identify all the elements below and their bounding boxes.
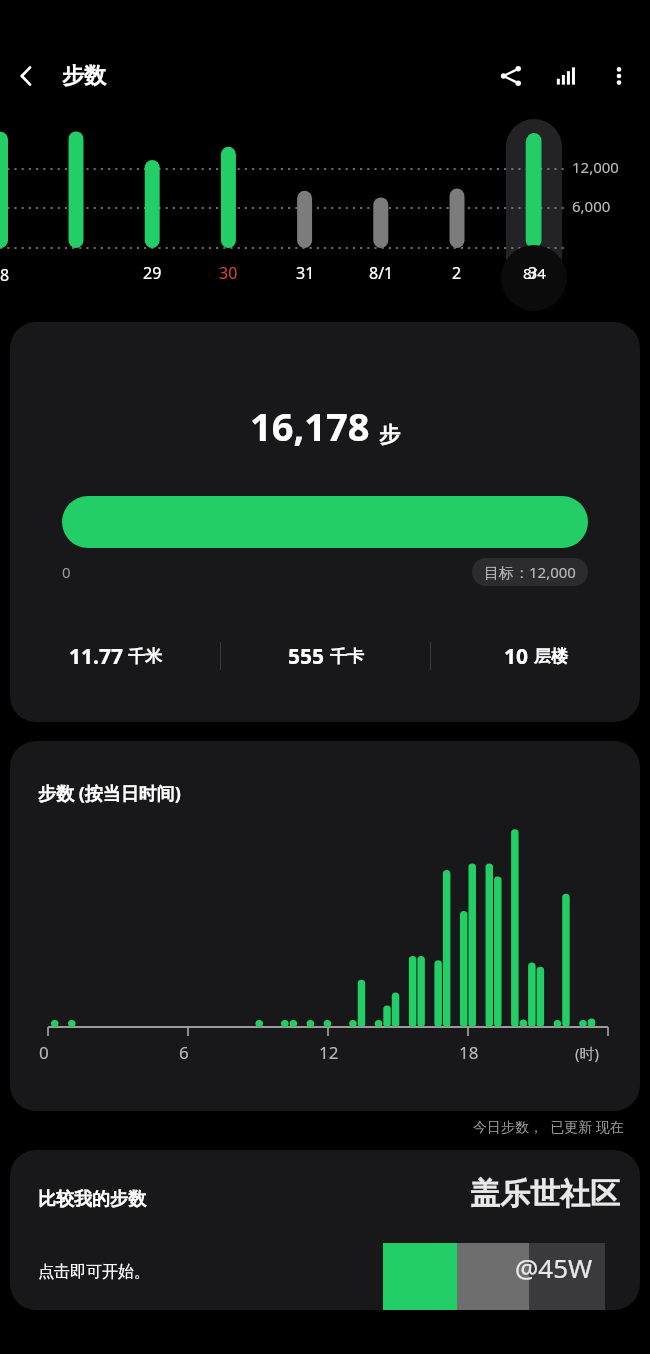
button[interactable]: 29	[122, 258, 182, 288]
staticText: 步数 (按当日时间)	[38, 781, 181, 806]
staticText: 3	[528, 262, 538, 284]
staticText: 今日步数， 已更新 现在	[473, 1117, 624, 1136]
button[interactable]: 8/1	[351, 258, 411, 288]
staticText: 8/4	[523, 263, 546, 283]
staticText: 比较我的步数	[38, 1188, 146, 1211]
staticText: 8	[0, 264, 10, 286]
staticText: 点击即可开始。	[38, 1262, 150, 1282]
button[interactable]: Back	[0, 49, 54, 103]
button[interactable]: More options	[592, 49, 646, 103]
button[interactable]: 3	[503, 258, 563, 288]
button[interactable]: 16,178	[10, 322, 640, 722]
staticText: 31	[296, 262, 315, 284]
staticText: 8/1	[369, 262, 394, 284]
button[interactable]: 31	[275, 258, 335, 288]
staticText: 12	[319, 1041, 339, 1064]
staticText: 步数	[62, 62, 106, 90]
button[interactable]: Chart	[538, 49, 592, 103]
staticText: 0	[62, 562, 71, 582]
button[interactable]: 步数 (按当日时间)	[10, 741, 640, 1111]
button[interactable]: 30	[198, 258, 258, 288]
button[interactable]: Share	[484, 49, 538, 103]
button[interactable]: 11.77	[10, 636, 220, 676]
staticText: 6,000	[572, 196, 611, 216]
staticText: 0	[39, 1041, 49, 1064]
staticText: @45W	[515, 1250, 593, 1285]
staticText: 千米	[128, 646, 162, 667]
staticText: 18	[459, 1041, 479, 1064]
button[interactable]: 10	[431, 636, 640, 676]
staticText: 步	[379, 422, 400, 448]
staticText: 12,000	[572, 157, 619, 177]
staticText: 30	[219, 262, 238, 284]
button[interactable]: 2	[427, 258, 487, 288]
staticText: 2	[452, 262, 462, 284]
staticText: 6	[179, 1041, 189, 1064]
staticText: 千卡	[330, 646, 364, 667]
staticText: 层楼	[534, 646, 568, 667]
staticText: 29	[143, 262, 162, 284]
staticText: 16,178	[250, 400, 370, 452]
button[interactable]: 555	[221, 636, 430, 676]
staticText: 11.77	[69, 642, 123, 671]
button[interactable]: 8/4	[504, 258, 564, 288]
staticText: 盖乐世社区	[470, 1175, 620, 1213]
staticText: 555	[288, 642, 325, 671]
staticText: (时)	[575, 1043, 600, 1063]
staticText: 目标：12,000	[484, 562, 576, 582]
staticText: 10	[504, 642, 529, 671]
button[interactable]: 比较我的步数	[10, 1150, 640, 1310]
button[interactable]	[506, 119, 562, 309]
